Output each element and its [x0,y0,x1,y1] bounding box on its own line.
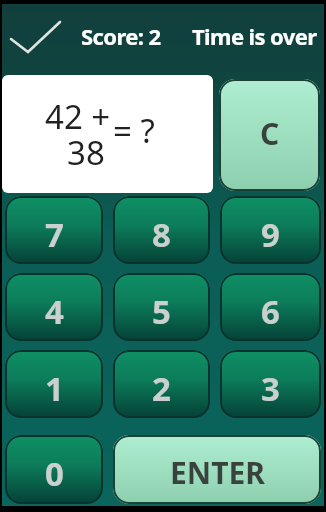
button[interactable]: 4 [5,273,103,341]
staticText: C [260,113,280,154]
button[interactable] [0,0,70,70]
button[interactable]: 8 [113,196,210,264]
button[interactable]: 2 [113,350,210,418]
button[interactable]: 9 [220,196,321,264]
staticText: 0 [45,451,64,496]
staticText: Time is over [192,21,317,51]
button[interactable]: 6 [220,273,321,341]
button[interactable]: 1 [5,350,103,418]
staticText: 7 [45,212,64,257]
button[interactable]: ENTER [113,435,321,504]
staticText: 4 [45,289,64,334]
staticText: 6 [261,289,280,334]
staticText: 38 [67,130,105,175]
staticText: Score: 2 [81,21,161,51]
staticText: 2 [152,366,171,411]
button[interactable]: 3 [220,350,321,418]
staticText: 3 [261,366,280,411]
button[interactable]: C [219,79,320,191]
staticText: 1 [45,366,64,411]
staticText: 8 [152,212,171,257]
button[interactable]: 5 [113,273,210,341]
staticText: = ? [113,108,155,153]
staticText: 5 [152,289,171,334]
staticText: ENTER [170,452,265,493]
staticText: 9 [261,212,280,257]
staticText: 42 + [45,94,111,139]
button[interactable]: 0 [5,435,103,504]
button[interactable]: 7 [5,196,103,264]
